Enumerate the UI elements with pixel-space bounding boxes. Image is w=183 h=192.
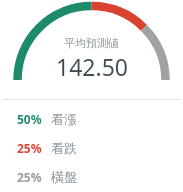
staticText: 25% — [17, 140, 42, 156]
staticText: 橫盤 — [51, 169, 77, 185]
button[interactable]: Average prediction gauge — [0, 0, 183, 99]
button[interactable]: 50% — [0, 104, 183, 133]
staticText: 看漲 — [51, 111, 77, 127]
staticText: 50% — [17, 111, 42, 127]
staticText: 142.50 — [56, 51, 128, 82]
staticText: 看跌 — [51, 140, 77, 156]
button[interactable]: 25% — [0, 133, 183, 162]
staticText: 平均預測値 — [64, 36, 119, 50]
button[interactable]: 25% — [0, 162, 183, 191]
staticText: 25% — [17, 169, 42, 185]
